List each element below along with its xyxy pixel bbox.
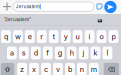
staticText: g — [58, 49, 62, 57]
staticText: y — [64, 32, 68, 41]
button[interactable]: Jerusalem — [13, 2, 94, 11]
button[interactable]: k — [91, 47, 100, 59]
button[interactable]: c — [41, 63, 51, 75]
button[interactable]: Apps — [95, 2, 103, 10]
button[interactable]: y — [61, 30, 71, 43]
button[interactable]: m — [89, 63, 99, 75]
staticText: n — [80, 65, 84, 74]
button[interactable]: Shift — [1, 63, 14, 75]
button[interactable]: p — [109, 30, 118, 43]
staticText: t — [53, 32, 55, 41]
button[interactable]: h — [67, 47, 77, 59]
button[interactable]: Hide keyboard — [95, 17, 105, 25]
button[interactable]: w — [13, 30, 23, 43]
staticText: e — [28, 32, 32, 41]
staticText: f — [46, 49, 49, 57]
button[interactable]: r — [37, 30, 47, 43]
staticText: o — [99, 32, 103, 41]
staticText: Jerusalem — [16, 4, 40, 9]
button[interactable]: b — [65, 63, 75, 75]
button[interactable]: f — [43, 47, 53, 59]
button[interactable]: g — [55, 47, 65, 59]
staticText: c — [44, 65, 48, 74]
staticText: z — [20, 65, 24, 74]
button[interactable]: o — [97, 30, 106, 43]
button[interactable]: e — [25, 30, 35, 43]
button[interactable]: v — [53, 63, 63, 75]
staticText: l — [106, 49, 108, 57]
staticText: h — [70, 49, 74, 57]
button[interactable]: d — [31, 47, 41, 59]
staticText: “Jerusalem” — [4, 17, 31, 22]
button[interactable]: a — [7, 47, 17, 59]
staticText: p — [111, 32, 115, 41]
button[interactable]: s — [19, 47, 29, 59]
staticText: s — [22, 49, 26, 57]
button[interactable]: t — [49, 30, 59, 43]
button[interactable]: q — [1, 30, 11, 43]
staticText: v — [56, 65, 60, 74]
button[interactable]: Send — [104, 1, 116, 13]
staticText: w — [15, 32, 21, 41]
button[interactable]: Add attachment — [1, 1, 13, 13]
staticText: i — [89, 32, 91, 41]
button[interactable]: “Jerusalem” — [0, 14, 37, 25]
button[interactable]: i — [85, 30, 94, 43]
staticText: d — [34, 49, 38, 57]
button[interactable]: x — [29, 63, 39, 75]
staticText: b — [68, 65, 72, 74]
staticText: m — [91, 65, 97, 74]
button[interactable]: u — [73, 30, 82, 43]
staticText: a — [10, 49, 14, 57]
staticText: u — [76, 32, 80, 41]
staticText: r — [40, 32, 43, 41]
button[interactable]: n — [77, 63, 87, 75]
button[interactable]: z — [17, 63, 27, 75]
button[interactable]: l — [103, 47, 112, 59]
staticText: q — [4, 32, 8, 41]
button[interactable]: Delete — [104, 63, 119, 75]
staticText: j — [83, 49, 85, 57]
button[interactable]: j — [79, 47, 88, 59]
staticText: x — [32, 65, 36, 74]
staticText: k — [93, 49, 97, 57]
